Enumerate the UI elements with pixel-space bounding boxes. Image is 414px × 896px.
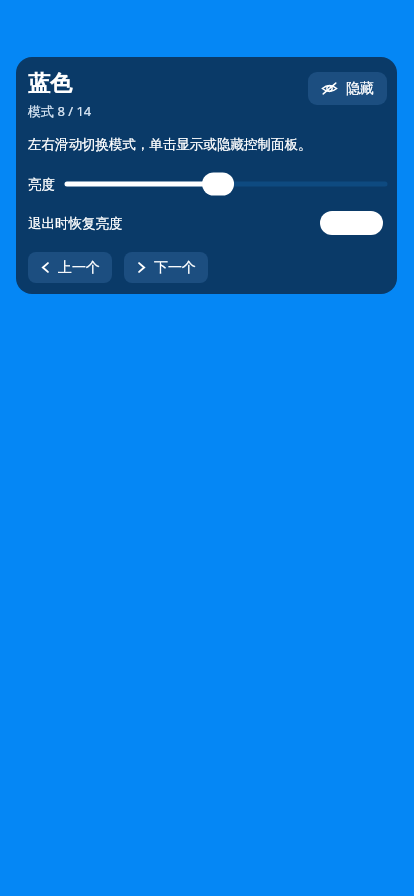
button[interactable]: 上一个: [28, 252, 112, 283]
button[interactable]: Hide: [308, 72, 387, 105]
button[interactable]: Restore brightness on exit toggle: [320, 211, 383, 235]
button[interactable]: 下一个: [124, 252, 208, 283]
other: Hide: [321, 80, 338, 97]
staticText: 上一个: [58, 259, 100, 277]
staticText: 左右滑动切换模式，单击显示或隐藏控制面板。: [28, 136, 312, 153]
staticText: 模式 8 / 14: [28, 102, 92, 120]
staticText: 隐藏: [346, 80, 374, 98]
staticText: 蓝色: [28, 70, 72, 98]
staticText: 亮度: [28, 176, 55, 193]
staticText: 下一个: [154, 259, 196, 277]
staticText: 退出时恢复亮度: [28, 215, 123, 232]
button[interactable]: Brightness slider: [67, 169, 385, 199]
